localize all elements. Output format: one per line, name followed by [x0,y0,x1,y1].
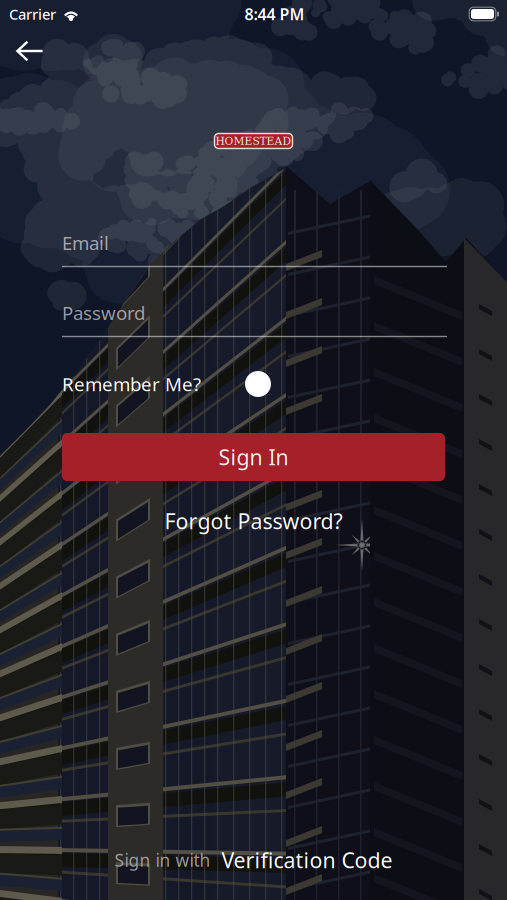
staticText: Password [62,300,145,325]
staticText: Sign In [218,443,288,471]
button[interactable]: Sign in with [0,843,507,877]
staticText: Remember Me? [62,372,201,396]
button[interactable]: Email [62,232,447,267]
button[interactable]: Back [7,29,53,73]
staticText: Verification Code [221,846,392,874]
button[interactable]: Sign In [62,433,445,481]
staticText: Forgot Password? [164,507,342,535]
button[interactable]: Remember Me [245,371,271,397]
staticText: Carrier [9,4,56,24]
button[interactable]: Password [62,302,447,337]
button[interactable]: Forgot Password? [62,508,445,534]
staticText: Email [62,230,109,255]
staticText: HOMESTEAD [215,135,291,147]
staticText: Sign in with [114,848,210,871]
staticText: 8:44 PM [245,3,305,25]
